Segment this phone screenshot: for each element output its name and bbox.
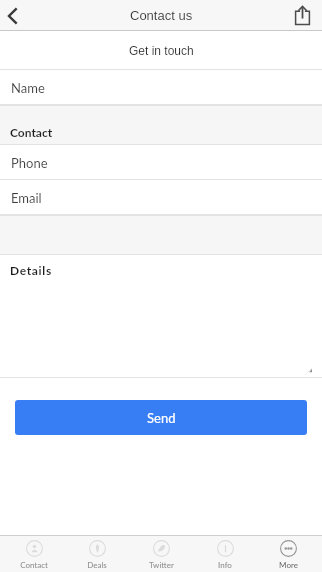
staticText: Send <box>147 410 176 426</box>
staticText: Get in touch <box>129 44 194 57</box>
staticText: Details <box>10 263 52 277</box>
staticText: Email <box>11 190 42 206</box>
button[interactable]: Phone <box>0 145 322 180</box>
button[interactable]: Send <box>15 400 307 435</box>
button[interactable]: More <box>258 540 318 572</box>
staticText: Phone <box>11 155 48 171</box>
button[interactable]: Share <box>290 0 322 31</box>
staticText: Deals <box>87 560 107 570</box>
button[interactable]: Deals <box>67 540 127 572</box>
staticText: More <box>279 560 298 570</box>
button[interactable]: Email <box>0 180 322 215</box>
staticText: Contact <box>20 560 48 570</box>
button[interactable]: Details <box>0 255 322 378</box>
staticText: Info <box>218 560 232 570</box>
button[interactable]: Back <box>0 0 32 31</box>
button[interactable]: Info <box>195 540 255 572</box>
button[interactable]: Contact <box>4 540 64 572</box>
staticText: Contact us <box>130 8 193 23</box>
button[interactable]: Twitter <box>131 540 191 572</box>
staticText: Contact <box>10 125 53 139</box>
button[interactable]: Name <box>0 70 322 105</box>
staticText: Name <box>11 80 45 96</box>
staticText: Twitter <box>149 560 174 570</box>
